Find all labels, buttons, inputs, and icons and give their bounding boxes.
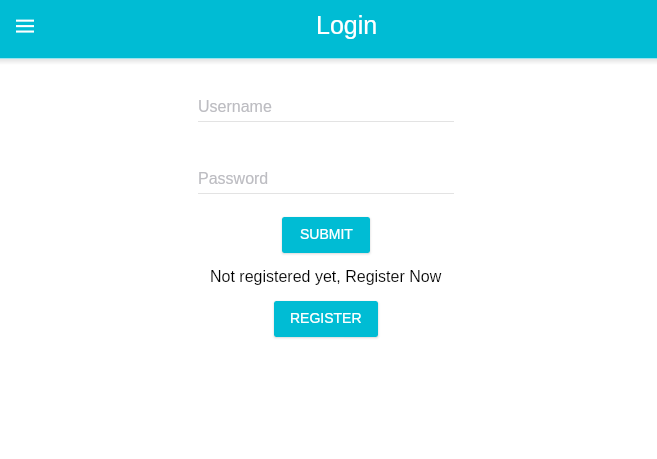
button[interactable]: Password — [198, 164, 454, 194]
button[interactable]: REGISTER — [274, 301, 378, 337]
button[interactable]: Username — [198, 92, 454, 122]
staticText: Username — [198, 98, 272, 116]
staticText: SUBMIT — [300, 226, 353, 242]
button[interactable]: Not registered yet, Register Now — [210, 268, 442, 286]
staticText: REGISTER — [290, 310, 362, 326]
staticText: Login — [316, 11, 378, 39]
button[interactable]: Open navigation menu — [1, 4, 49, 52]
staticText: Password — [198, 170, 269, 188]
button[interactable]: SUBMIT — [282, 217, 370, 253]
